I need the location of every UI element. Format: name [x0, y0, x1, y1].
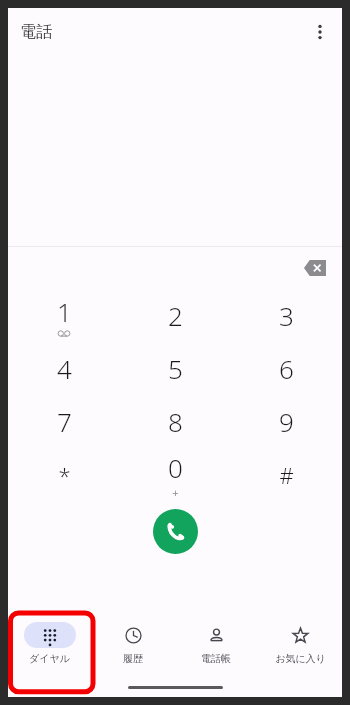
staticText: 6 [279, 351, 294, 386]
staticText: 4 [57, 351, 72, 386]
button[interactable]: * [8, 448, 120, 501]
button[interactable]: 4 [8, 342, 120, 395]
button[interactable]: お気に入り [258, 618, 342, 669]
staticText: 7 [57, 404, 72, 439]
staticText: お気に入り [275, 652, 326, 665]
staticText: ダイヤル [29, 652, 70, 665]
staticText: + [172, 485, 179, 500]
staticText: 電話 [20, 22, 52, 42]
button[interactable]: Backspace [298, 251, 332, 285]
staticText: 1 [57, 294, 72, 329]
staticText: # [279, 460, 294, 490]
button[interactable]: 7 [8, 395, 120, 448]
button[interactable]: More options [304, 16, 336, 48]
staticText: 0 [168, 450, 183, 485]
button[interactable]: 3 [231, 289, 342, 342]
button[interactable]: 9 [231, 395, 342, 448]
button[interactable]: # [231, 448, 342, 501]
button[interactable]: 0 [120, 448, 231, 501]
staticText: 5 [168, 351, 183, 386]
staticText: 2 [168, 298, 183, 333]
button[interactable]: ダイヤル [8, 618, 91, 669]
staticText: * [58, 460, 71, 490]
staticText: 履歴 [123, 652, 143, 665]
button[interactable]: 2 [120, 289, 231, 342]
button[interactable]: Call [153, 509, 198, 554]
staticText: 電話帳 [201, 652, 231, 665]
button[interactable]: 履歴 [91, 618, 174, 669]
button[interactable]: 電話帳 [174, 618, 258, 669]
button[interactable]: 5 [120, 342, 231, 395]
staticText: 9 [279, 404, 294, 439]
button[interactable]: 1 [8, 289, 120, 342]
button[interactable]: 6 [231, 342, 342, 395]
staticText: 8 [168, 404, 183, 439]
button[interactable]: 8 [120, 395, 231, 448]
staticText: 3 [279, 298, 294, 333]
